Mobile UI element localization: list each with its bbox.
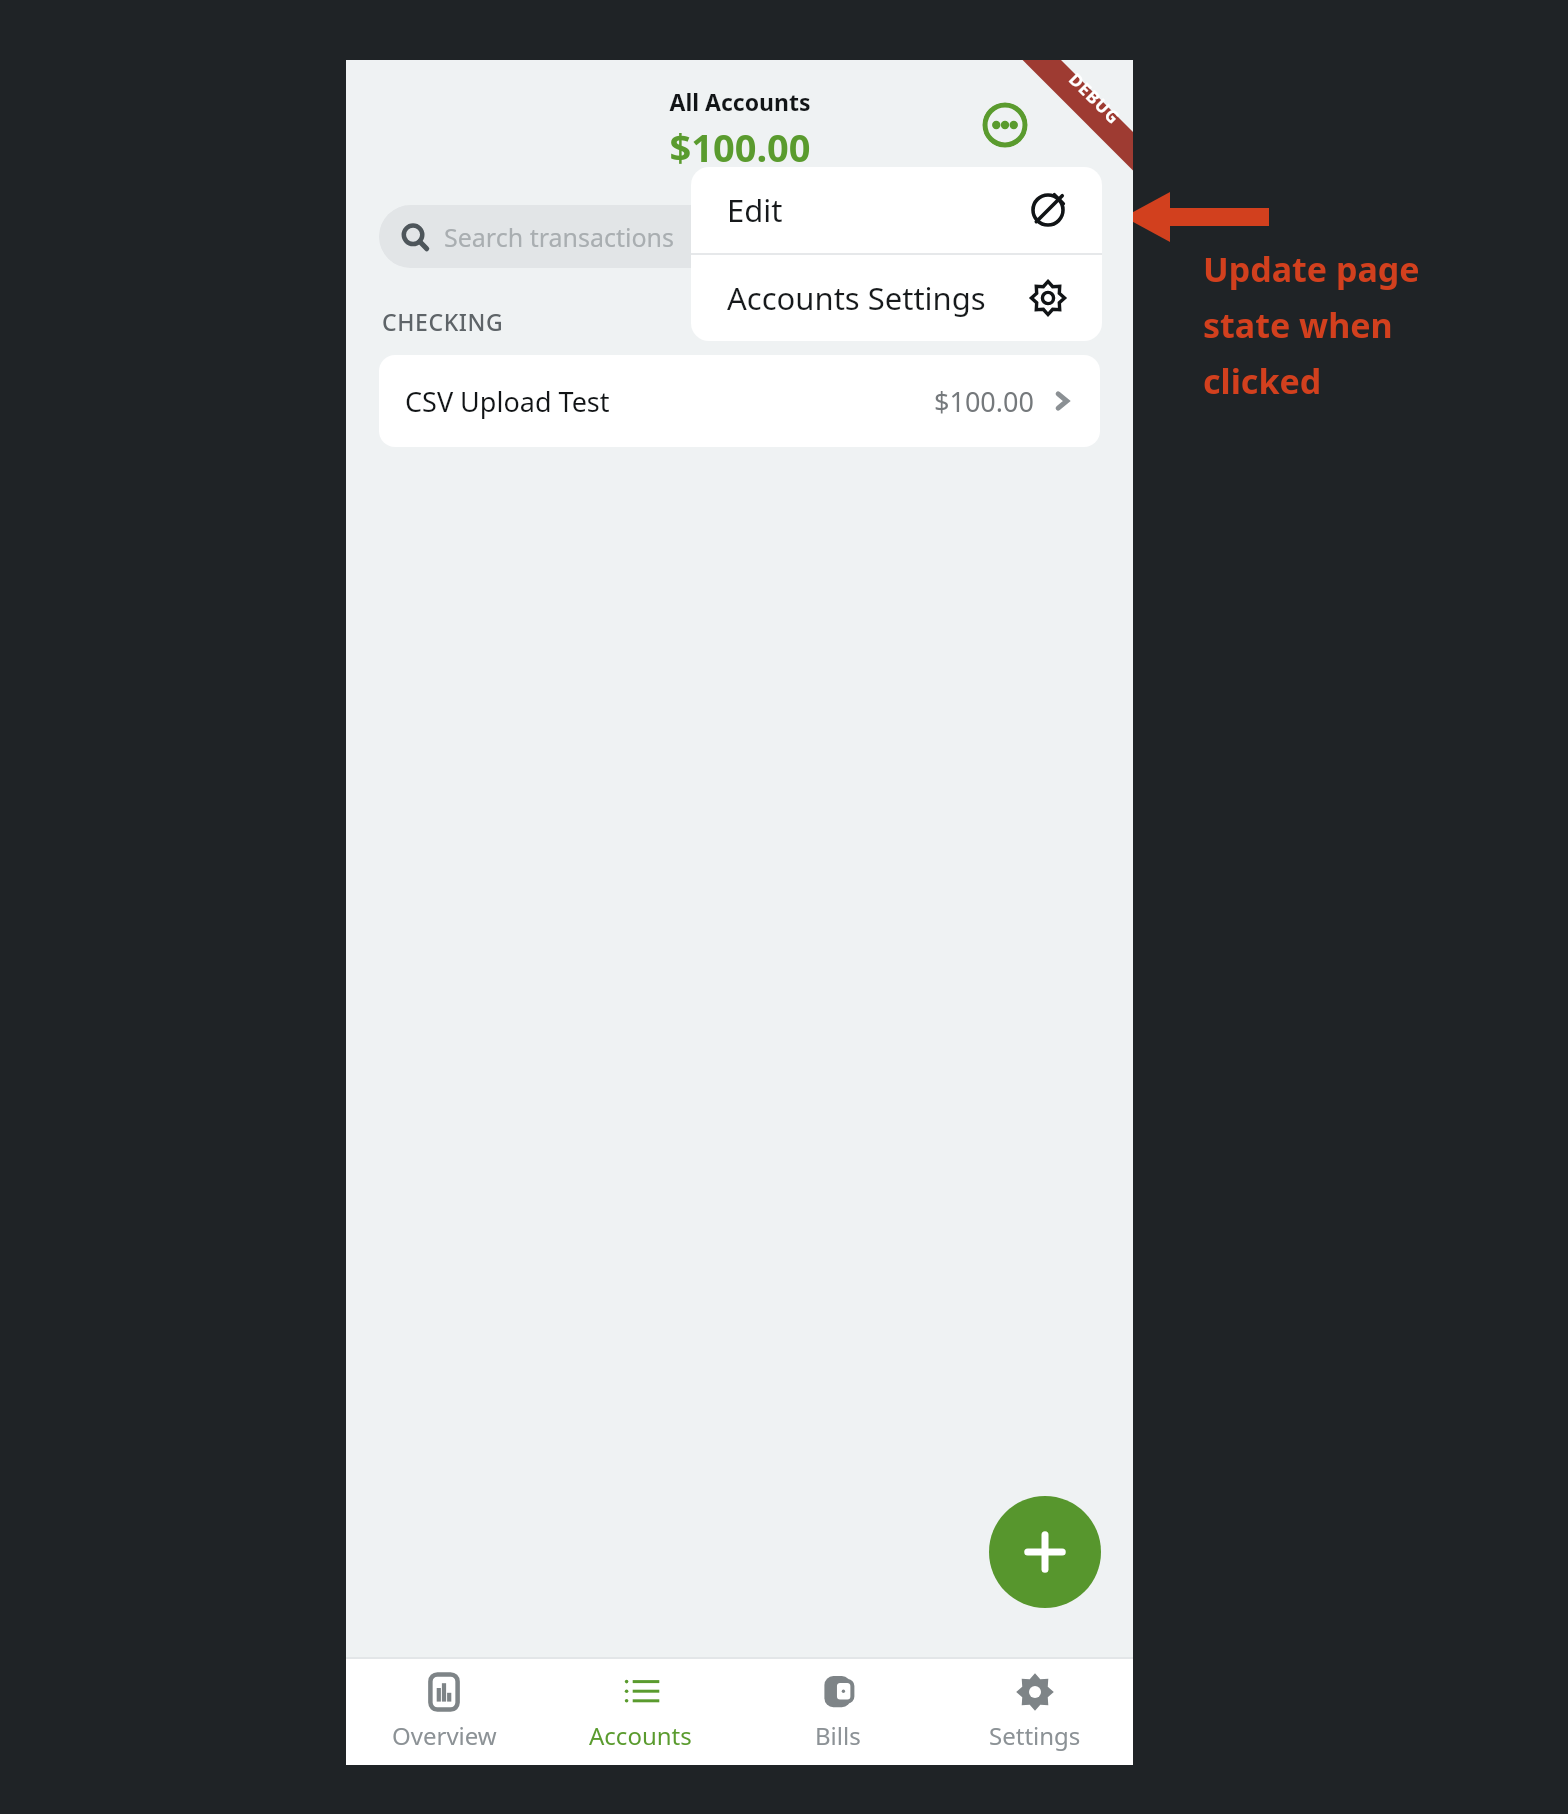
button[interactable]: CSV Upload Test (379, 355, 1100, 447)
button[interactable]: More options (982, 102, 1028, 148)
button[interactable]: Accounts Settings (691, 255, 1102, 341)
button[interactable]: Search transactions (379, 205, 1100, 268)
staticText: $100.00 (934, 383, 1034, 420)
button[interactable]: Edit (691, 167, 1102, 253)
staticText: CHECKING (382, 306, 504, 337)
staticText: Update page state when clicked (1203, 246, 1420, 404)
button[interactable]: Settings (936, 1659, 1133, 1765)
staticText: Accounts Settings (727, 277, 986, 319)
staticText: $100.00 (669, 121, 811, 173)
staticText: Settings (989, 1719, 1081, 1752)
staticText: CSV Upload Test (405, 383, 610, 420)
staticText: Edit (727, 189, 783, 231)
staticText: DEBUG (1064, 68, 1126, 129)
staticText: Accounts (589, 1719, 692, 1752)
staticText: Search transactions (444, 220, 674, 254)
button[interactable]: Bills (739, 1659, 936, 1765)
button[interactable]: Accounts (542, 1659, 739, 1765)
staticText: Bills (815, 1719, 861, 1752)
staticText: All Accounts (669, 86, 811, 117)
button[interactable]: Add account (989, 1496, 1101, 1608)
staticText: Overview (392, 1719, 497, 1752)
button[interactable]: Overview (346, 1659, 542, 1765)
